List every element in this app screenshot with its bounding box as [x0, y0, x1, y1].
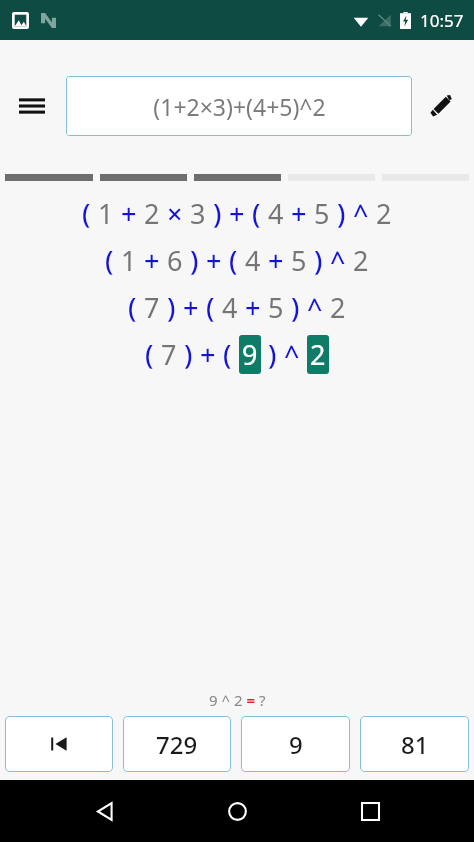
staticText: 1: [98, 195, 114, 232]
staticText: 6: [167, 242, 183, 279]
button[interactable]: (: [0, 284, 474, 331]
staticText: +: [229, 195, 245, 232]
staticText: +: [144, 242, 160, 279]
button[interactable]: [5, 716, 113, 772]
button[interactable]: (: [0, 190, 474, 237]
staticText: 4: [268, 195, 284, 232]
staticText: ): [314, 242, 323, 279]
staticText: ): [268, 336, 277, 373]
staticText: 81: [401, 728, 429, 761]
staticText: 10:57: [420, 9, 464, 32]
button[interactable]: (: [0, 331, 474, 378]
staticText: 9: [242, 336, 258, 373]
button[interactable]: (: [0, 237, 474, 284]
button[interactable]: Back: [77, 783, 133, 839]
staticText: +: [121, 195, 137, 232]
staticText: 1: [121, 242, 137, 279]
staticText: (: [252, 195, 261, 232]
button[interactable]: Edit expression: [418, 83, 464, 129]
staticText: 729: [156, 728, 198, 761]
staticText: +: [268, 242, 284, 279]
staticText: 4: [222, 289, 238, 326]
button[interactable]: Home: [209, 783, 265, 839]
staticText: 4: [245, 242, 261, 279]
staticText: ): [213, 195, 222, 232]
staticText: 2: [144, 195, 160, 232]
staticText: (: [223, 336, 232, 373]
staticText: ): [184, 336, 193, 373]
staticText: (: [105, 242, 114, 279]
staticText: (: [145, 336, 154, 373]
staticText: ): [337, 195, 346, 232]
staticText: ): [291, 289, 300, 326]
staticText: ^: [284, 336, 300, 373]
staticText: 5: [291, 242, 307, 279]
staticText: 2: [376, 195, 392, 232]
staticText: +: [291, 195, 307, 232]
button[interactable]: Recent apps: [342, 783, 398, 839]
staticText: 2: [353, 242, 369, 279]
staticText: ×: [167, 195, 183, 232]
staticText: 2: [330, 289, 346, 326]
staticText: ^: [353, 195, 369, 232]
staticText: 5: [268, 289, 284, 326]
button[interactable]: 81: [360, 716, 469, 772]
staticText: (1+2×3)+(4+5)^2: [153, 91, 326, 122]
staticText: +: [245, 289, 261, 326]
staticText: ^: [330, 242, 346, 279]
button[interactable]: 729: [123, 716, 231, 772]
staticText: ^: [307, 289, 323, 326]
staticText: 3: [190, 195, 206, 232]
staticText: (: [229, 242, 238, 279]
staticText: (: [128, 289, 137, 326]
staticText: 2: [310, 336, 326, 373]
staticText: 7: [161, 336, 177, 373]
button[interactable]: 9: [241, 716, 350, 772]
button[interactable]: (1+2×3)+(4+5)^2: [66, 76, 412, 136]
staticText: ): [167, 289, 176, 326]
staticText: 9 ^ 2 = ?: [209, 690, 266, 710]
staticText: 9: [289, 728, 303, 761]
staticText: ): [190, 242, 199, 279]
button[interactable]: Open navigation menu: [8, 82, 56, 130]
staticText: (: [206, 289, 215, 326]
staticText: +: [183, 289, 199, 326]
staticText: +: [200, 336, 216, 373]
staticText: 5: [314, 195, 330, 232]
staticText: +: [206, 242, 222, 279]
staticText: 7: [144, 289, 160, 326]
staticText: (: [82, 195, 91, 232]
